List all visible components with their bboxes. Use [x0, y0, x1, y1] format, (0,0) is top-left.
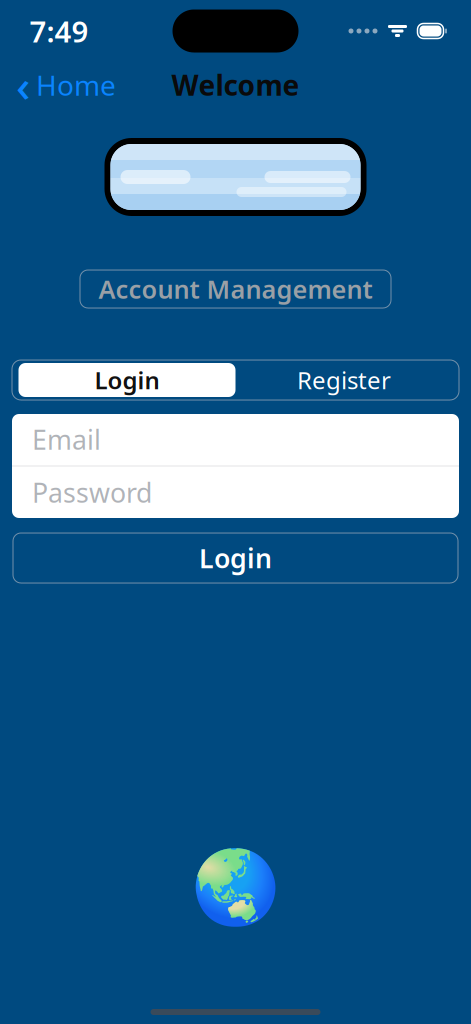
- button[interactable]: Register: [235, 363, 452, 397]
- button[interactable]: Account Management: [80, 270, 391, 308]
- staticText: 7:49: [29, 11, 88, 50]
- staticText: Home: [36, 66, 116, 104]
- staticText: Register: [297, 364, 391, 396]
- button[interactable]: Login: [18, 363, 235, 397]
- staticText: Welcome: [171, 66, 299, 104]
- staticText: Password: [32, 475, 152, 510]
- staticText: ‹: [16, 56, 30, 114]
- staticText: Login: [94, 364, 159, 396]
- button[interactable]: ‹: [0, 50, 132, 120]
- button[interactable]: Email: [12, 413, 459, 465]
- staticText: Login: [199, 540, 272, 576]
- staticText: Account Management: [98, 272, 372, 306]
- button[interactable]: Password: [12, 466, 459, 518]
- staticText: 🌏: [190, 847, 280, 929]
- button[interactable]: Login: [13, 533, 458, 583]
- staticText: Email: [32, 422, 101, 457]
